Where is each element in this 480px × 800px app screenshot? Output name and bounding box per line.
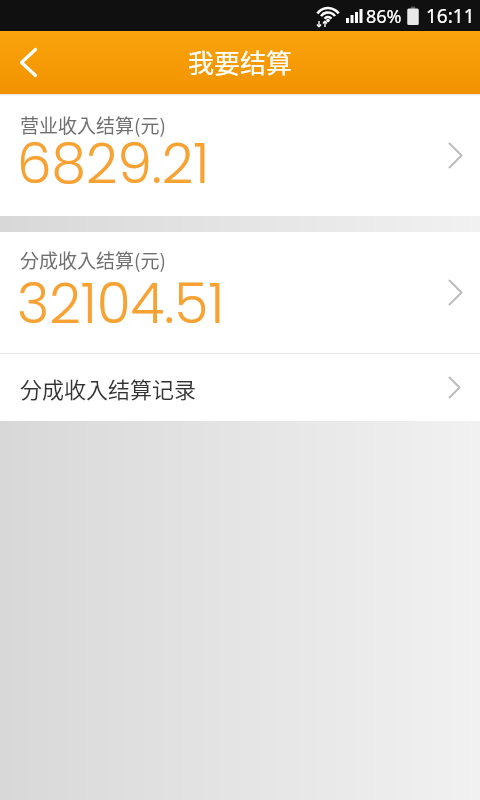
- staticText: 6829.21: [17, 125, 210, 202]
- button[interactable]: 分成收入结算(元): [0, 232, 480, 353]
- staticText: 我要结算: [188, 43, 293, 81]
- button[interactable]: [0, 31, 56, 94]
- staticText: 分成收入结算记录: [20, 372, 197, 404]
- staticText: 32104.51: [17, 265, 225, 342]
- button[interactable]: 营业收入结算(元): [0, 94, 480, 216]
- staticText: 分成收入结算(元): [20, 246, 166, 274]
- staticText: 营业收入结算(元): [20, 111, 166, 139]
- staticText: 86%: [366, 4, 402, 29]
- staticText: 16:11: [426, 3, 475, 29]
- button[interactable]: 分成收入结算记录: [0, 354, 480, 421]
